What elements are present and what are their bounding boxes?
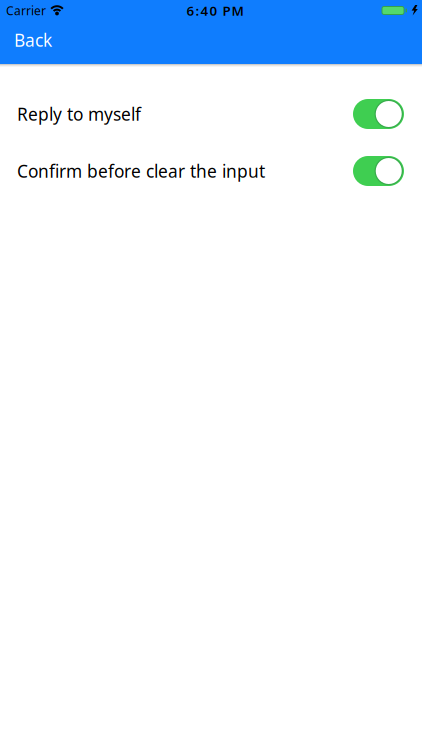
staticText: Confirm before clear the input (17, 159, 265, 182)
staticText: Carrier (6, 2, 46, 18)
button[interactable]: Confirm before clear the input (353, 156, 404, 186)
staticText: Back (14, 28, 52, 51)
staticText: Reply to myself (17, 102, 141, 125)
button[interactable]: Back (14, 28, 52, 56)
button[interactable]: Reply to myself (353, 99, 404, 129)
staticText: 6:40 PM (186, 2, 243, 19)
